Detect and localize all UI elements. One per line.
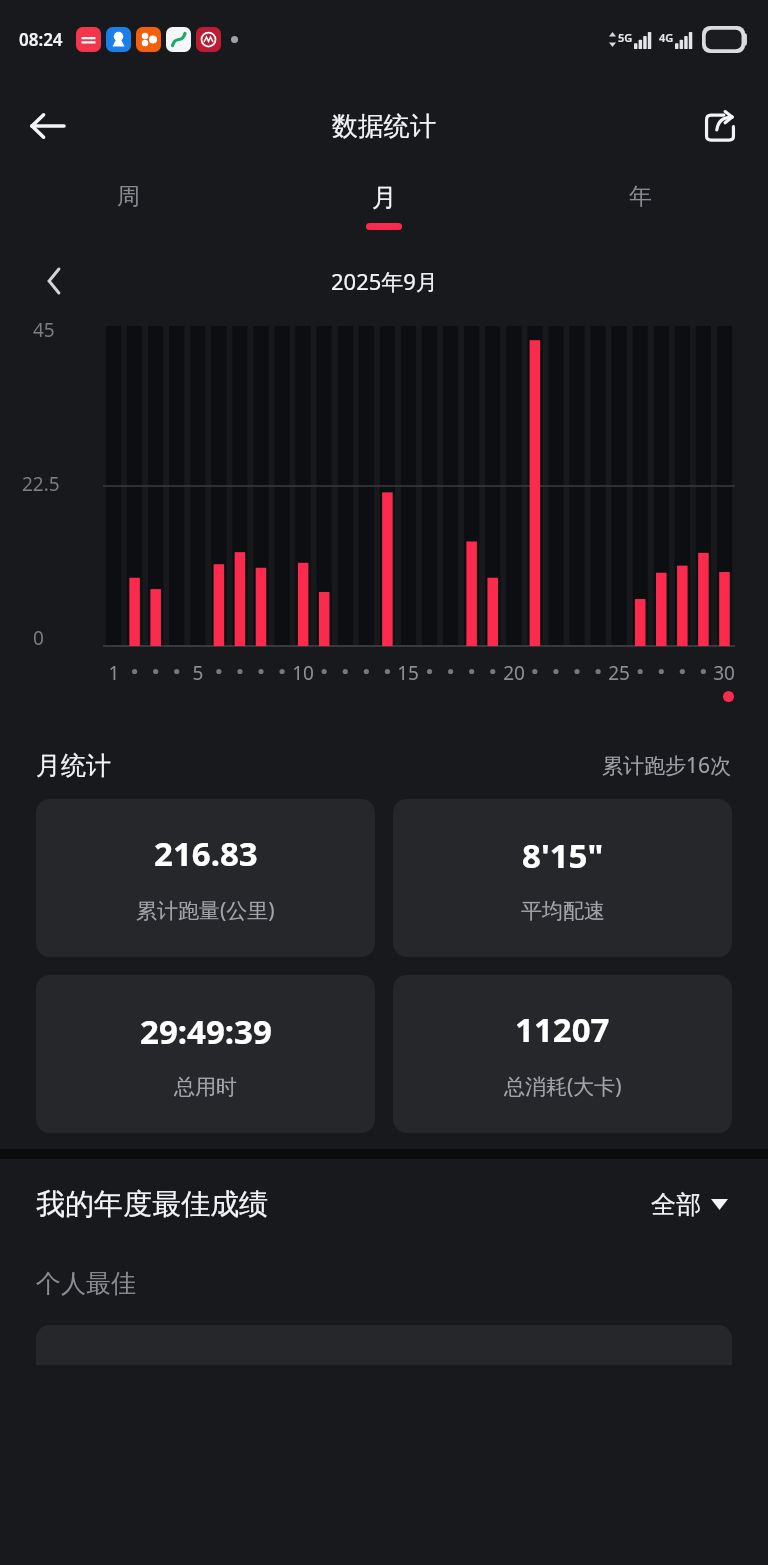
button[interactable]: 年 (512, 174, 768, 252)
staticText: 22.5 (22, 471, 60, 497)
button[interactable]: 11207 (393, 975, 732, 1133)
staticText: 15 (392, 660, 424, 686)
staticText: 10 (287, 660, 319, 686)
staticText: 总消耗(大卡) (504, 1072, 622, 1101)
staticText: 全部 (651, 1189, 701, 1220)
button[interactable]: 216.83 (36, 799, 375, 957)
staticText: 总用时 (174, 1074, 237, 1100)
staticText: 08:24 (19, 28, 63, 51)
staticText: 30 (708, 660, 740, 686)
staticText: 累计跑步16次 (602, 751, 732, 780)
staticText: 平均配速 (521, 898, 605, 924)
button[interactable]: 全部 (647, 1185, 732, 1224)
staticText: 11207 (515, 1007, 610, 1052)
button[interactable]: 8'15" (393, 799, 732, 957)
staticText: 5 (182, 660, 214, 686)
staticText: 数据统计 (332, 110, 436, 143)
staticText: 0 (33, 625, 44, 651)
button[interactable]: Share (694, 100, 746, 152)
staticText: 8'15" (522, 833, 604, 878)
staticText: 累计跑量(公里) (136, 896, 275, 925)
button[interactable]: 29:49:39 (36, 975, 375, 1133)
staticText: 20 (498, 660, 530, 686)
staticText: 5G (618, 30, 633, 45)
staticText: 个人最佳 (36, 1268, 136, 1299)
staticText: 29:49:39 (140, 1009, 272, 1054)
button[interactable]: 月 (256, 174, 512, 252)
button[interactable]: Previous month (32, 259, 76, 303)
staticText: 月 (372, 182, 397, 213)
staticText: 周 (117, 182, 140, 211)
staticText: 4G (659, 30, 674, 45)
staticText: 216.83 (154, 831, 258, 876)
button[interactable]: 周 (0, 174, 256, 252)
staticText: 2025年9月 (331, 266, 438, 296)
staticText: 1 (98, 660, 130, 686)
staticText: 月统计 (36, 750, 111, 781)
staticText: 年 (629, 182, 652, 211)
button[interactable]: Back (20, 99, 74, 153)
staticText: 45 (33, 317, 55, 343)
staticText: 我的年度最佳成绩 (36, 1186, 268, 1223)
staticText: 25 (603, 660, 635, 686)
